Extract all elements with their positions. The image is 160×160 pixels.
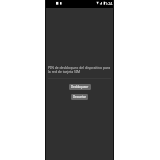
button[interactable]: Descartar [71, 94, 88, 100]
staticText: Descartar [73, 95, 86, 99]
staticText: Desbloquear [71, 85, 89, 89]
other: Status icons [46, 0, 113, 8]
staticText: PIN de desbloqueo del dispositivo para l… [48, 65, 111, 74]
button[interactable]: Desbloquear [69, 84, 91, 90]
staticText: 1:24 [105, 1, 113, 6]
